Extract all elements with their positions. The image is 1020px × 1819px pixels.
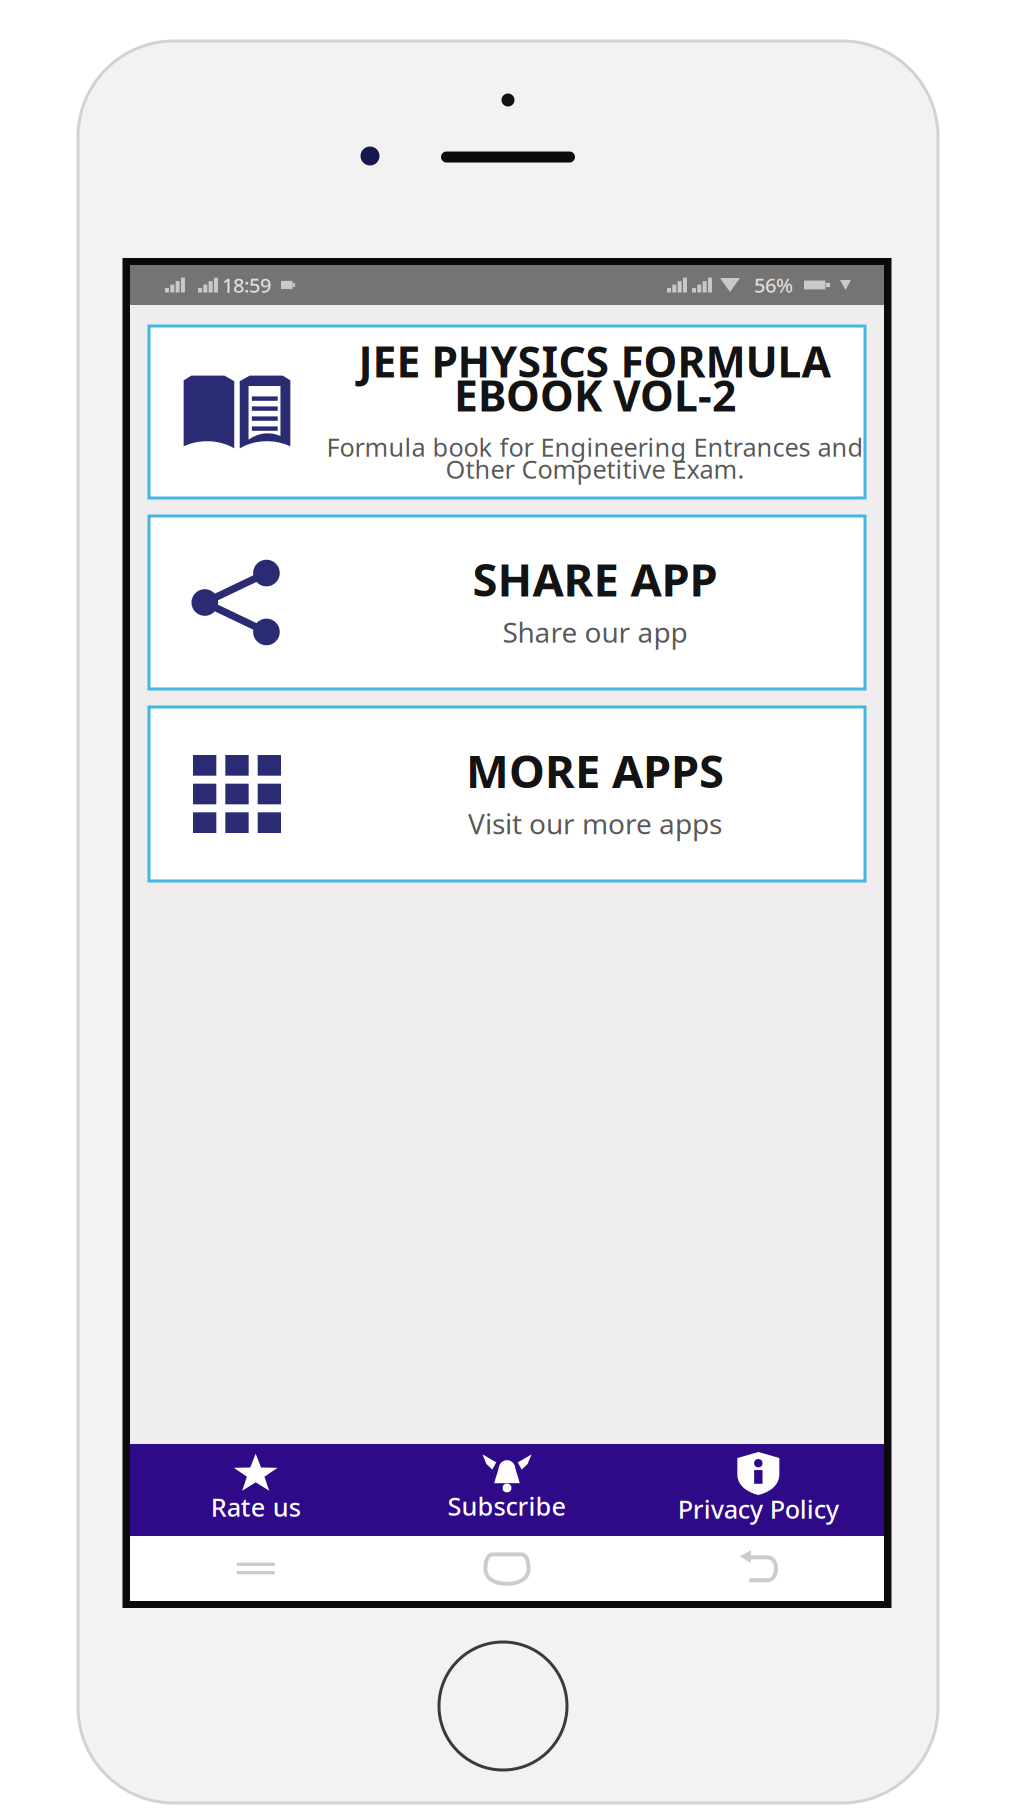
button[interactable]: SHARE APP (149, 516, 865, 689)
staticText: EBOOK VOL-2 (454, 367, 736, 423)
staticText: Privacy Policy (678, 1492, 839, 1526)
button[interactable]: Rate us (130, 1444, 381, 1536)
staticText: Visit our more apps (468, 805, 722, 842)
button[interactable]: Privacy Policy (633, 1444, 884, 1536)
button[interactable]: Home (381, 1536, 633, 1601)
staticText: Other Competitive Exam. (445, 452, 744, 486)
staticText: JEE PHYSICS FORMULA (358, 333, 831, 389)
staticText: 56% (754, 272, 793, 298)
staticText: SHARE APP (472, 549, 717, 609)
button[interactable]: Subscribe (381, 1444, 633, 1536)
button[interactable]: Recents (130, 1536, 381, 1601)
staticText: Share our app (502, 613, 687, 651)
staticText: Rate us (211, 1490, 301, 1524)
staticText: Formula book for Engineering Entrances a… (326, 430, 863, 464)
staticText: MORE APPS (466, 740, 724, 801)
staticText: Subscribe (447, 1489, 566, 1523)
staticText: 18:59 (222, 272, 271, 298)
button[interactable]: JEE PHYSICS FORMULA (149, 326, 865, 498)
button[interactable]: Back (633, 1536, 884, 1601)
button[interactable]: MORE APPS (149, 707, 865, 881)
